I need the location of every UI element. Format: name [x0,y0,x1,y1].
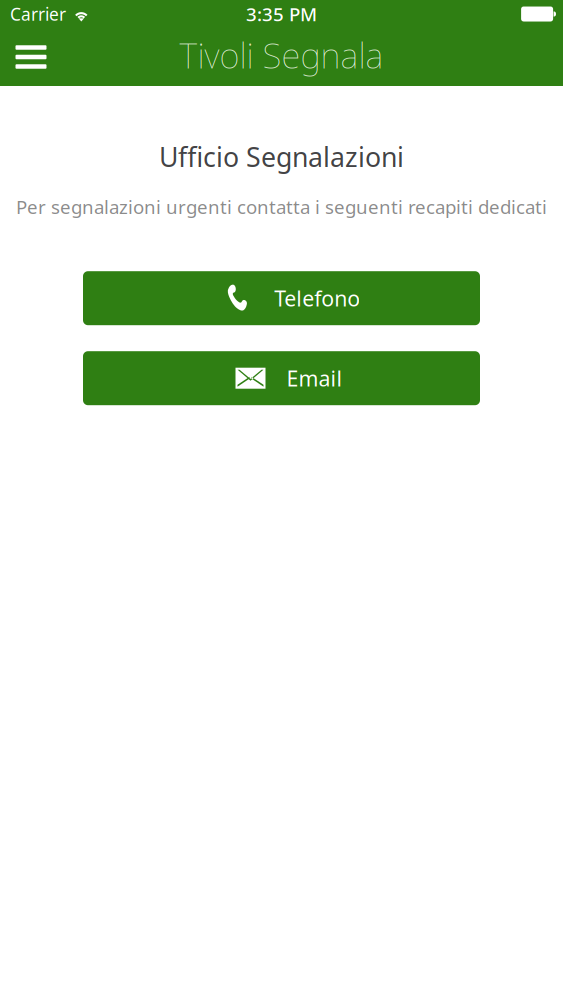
staticText: Per segnalazioni urgenti contatta i segu… [16,194,547,219]
button[interactable]: Menu [0,28,62,86]
button[interactable]: Telefono [83,271,480,325]
staticText: Email [286,364,342,392]
staticText: Ufficio Segnalazioni [159,139,404,174]
staticText: 3:35 PM [246,2,317,26]
button[interactable]: Email [83,351,480,405]
staticText: Tivoli Segnala [179,32,383,78]
staticText: Telefono [274,284,360,312]
staticText: Carrier [10,2,66,25]
